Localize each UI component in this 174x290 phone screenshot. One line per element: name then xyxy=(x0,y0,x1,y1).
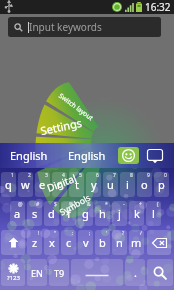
staticText: e xyxy=(39,177,46,192)
staticText: i xyxy=(126,177,129,192)
button[interactable]: f xyxy=(61,201,76,226)
button[interactable]: Switch layout xyxy=(35,73,117,139)
staticText: & xyxy=(87,201,91,208)
button[interactable]: n xyxy=(112,230,127,255)
staticText: v xyxy=(83,235,89,250)
button[interactable]: v xyxy=(78,230,93,255)
staticText: 0 xyxy=(164,172,167,179)
staticText: # xyxy=(36,201,40,208)
staticText: j xyxy=(118,206,121,221)
button[interactable]: t xyxy=(69,172,84,197)
staticText: m xyxy=(131,235,142,250)
staticText: 16:32 xyxy=(145,0,171,14)
staticText: * xyxy=(105,201,108,208)
button[interactable]: u xyxy=(103,172,118,197)
staticText: ?123 xyxy=(7,274,20,282)
staticText: q xyxy=(5,177,12,192)
button[interactable]: s xyxy=(27,201,42,226)
button[interactable]: m xyxy=(129,230,144,255)
staticText: % xyxy=(69,201,74,208)
button[interactable]: e xyxy=(35,172,50,197)
button[interactable]: Keyboard xyxy=(145,147,165,164)
staticText: p xyxy=(158,177,165,192)
button[interactable]: l xyxy=(146,201,161,226)
button[interactable]: h xyxy=(95,201,110,226)
staticText: : xyxy=(72,230,74,237)
staticText: @ xyxy=(18,201,23,208)
staticText: " xyxy=(54,230,57,237)
staticText: r xyxy=(57,177,62,192)
staticText: Switch layout xyxy=(57,91,95,122)
staticText: EN xyxy=(31,267,43,279)
staticText: Settings xyxy=(39,115,83,138)
staticText: s xyxy=(32,206,38,221)
staticText: ' xyxy=(106,230,108,237)
button[interactable]: y xyxy=(86,172,101,197)
staticText: g xyxy=(82,206,89,221)
button[interactable]: Input keywords xyxy=(8,17,161,37)
staticText: b xyxy=(99,235,106,250)
button[interactable]: English xyxy=(0,143,58,168)
staticText: x xyxy=(49,235,55,250)
staticText: k xyxy=(134,206,140,221)
staticText: 1 xyxy=(11,172,14,179)
button[interactable]: b xyxy=(95,230,110,255)
button[interactable]: a xyxy=(10,201,25,226)
button[interactable]: i xyxy=(120,172,135,197)
staticText: - xyxy=(123,201,125,208)
staticText: w xyxy=(21,177,30,192)
button[interactable]: k xyxy=(129,201,144,226)
button[interactable]: Shift xyxy=(1,230,25,255)
staticText: 6 xyxy=(96,172,99,179)
button[interactable]: Emoji xyxy=(118,147,139,164)
staticText: . xyxy=(134,265,137,280)
button[interactable]: p xyxy=(154,172,169,197)
button[interactable]: q xyxy=(1,172,16,197)
staticText: Digital xyxy=(44,171,78,195)
staticText: English xyxy=(10,148,48,163)
staticText: ! xyxy=(38,230,40,237)
button[interactable]: x xyxy=(44,230,59,255)
staticText: y xyxy=(91,177,97,192)
staticText: ( xyxy=(157,201,159,208)
staticText: l xyxy=(152,206,155,221)
staticText: T9 xyxy=(54,267,65,279)
button[interactable]: w xyxy=(18,172,33,197)
staticText: 5 xyxy=(79,172,82,179)
staticText: 3 xyxy=(45,172,48,179)
staticText: u xyxy=(107,177,114,192)
staticText: Input keywords xyxy=(29,20,102,34)
staticText: / xyxy=(140,230,142,237)
button[interactable]: Symbols xyxy=(32,176,118,234)
staticText: a xyxy=(14,206,21,221)
staticText: n xyxy=(116,235,123,250)
staticText: + xyxy=(139,201,142,208)
staticText: 7 xyxy=(113,172,116,179)
button[interactable]: r xyxy=(52,172,67,197)
staticText: t xyxy=(75,177,79,192)
button[interactable]: Search xyxy=(147,259,173,286)
button[interactable]: Space xyxy=(71,259,123,286)
staticText: 2 xyxy=(28,172,31,179)
button[interactable]: Digital xyxy=(16,159,106,207)
button[interactable]: Settings xyxy=(1,259,25,286)
button[interactable]: d xyxy=(44,201,59,226)
button[interactable]: j xyxy=(112,201,127,226)
staticText: 8 xyxy=(130,172,133,179)
button[interactable]: g xyxy=(78,201,93,226)
staticText: z xyxy=(32,235,38,250)
button[interactable]: . xyxy=(125,259,145,286)
staticText: English xyxy=(68,148,106,163)
button[interactable]: c xyxy=(61,230,76,255)
button[interactable]: T9 xyxy=(49,259,69,286)
button[interactable]: o xyxy=(137,172,152,197)
button[interactable]: z xyxy=(27,230,42,255)
staticText: d xyxy=(48,206,55,221)
staticText: o xyxy=(141,177,148,192)
button[interactable]: Settings xyxy=(15,109,107,143)
staticText: f xyxy=(67,206,71,221)
button[interactable]: English xyxy=(58,143,116,168)
button[interactable]: Backspace xyxy=(147,230,171,255)
button[interactable]: EN xyxy=(27,259,47,286)
staticText: 9 xyxy=(147,172,150,179)
